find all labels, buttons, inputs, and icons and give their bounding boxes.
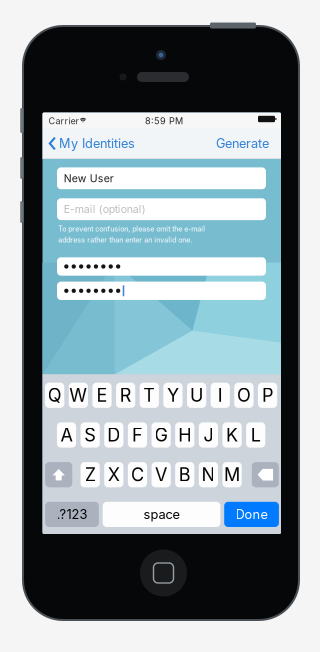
button[interactable]: My Identities bbox=[47, 128, 136, 159]
button[interactable]: M bbox=[222, 462, 242, 487]
staticText: U bbox=[190, 384, 203, 406]
staticText: T bbox=[143, 384, 155, 406]
staticText: My Identities bbox=[59, 136, 135, 151]
staticText: F bbox=[132, 424, 143, 446]
button[interactable]: K bbox=[222, 422, 242, 448]
button[interactable]: F bbox=[128, 422, 147, 448]
button[interactable]: L bbox=[246, 422, 265, 448]
staticText: E-mail (optional) bbox=[64, 203, 146, 215]
button[interactable]: .?123 bbox=[45, 502, 99, 527]
button[interactable]: S bbox=[81, 422, 100, 448]
button[interactable]: T bbox=[140, 383, 159, 408]
button[interactable]: Q bbox=[45, 383, 64, 408]
button[interactable]: E bbox=[92, 383, 112, 408]
staticText: C bbox=[131, 464, 144, 486]
button[interactable]: Shift bbox=[45, 462, 72, 487]
staticText: K bbox=[226, 424, 238, 446]
button[interactable]: J bbox=[199, 422, 218, 448]
staticText: Carrier bbox=[48, 115, 78, 126]
button[interactable]: O bbox=[234, 383, 253, 408]
button[interactable]: E-mail (optional) bbox=[57, 198, 266, 220]
button[interactable]: space bbox=[103, 502, 220, 527]
staticText: .?123 bbox=[56, 507, 87, 522]
staticText: D bbox=[107, 424, 120, 446]
staticText: Q bbox=[48, 384, 62, 406]
button[interactable]: Z bbox=[81, 462, 100, 487]
staticText: Z bbox=[85, 464, 96, 486]
staticText: J bbox=[203, 424, 213, 446]
button[interactable]: B bbox=[175, 462, 194, 487]
button[interactable]: W bbox=[69, 383, 88, 408]
staticText: space bbox=[144, 507, 180, 522]
button[interactable]: Generate bbox=[199, 128, 269, 159]
staticText: B bbox=[179, 464, 191, 486]
staticText: Generate bbox=[216, 136, 269, 151]
staticText: address rather than enter an invalid one… bbox=[58, 235, 192, 244]
staticText: V bbox=[155, 464, 167, 486]
button[interactable]: D bbox=[104, 422, 123, 448]
button[interactable] bbox=[57, 282, 266, 300]
staticText: I bbox=[218, 384, 223, 406]
staticText: Y bbox=[167, 384, 179, 406]
button[interactable] bbox=[57, 257, 266, 276]
button[interactable]: P bbox=[258, 383, 277, 408]
button[interactable]: I bbox=[211, 383, 230, 408]
staticText: H bbox=[178, 424, 191, 446]
button[interactable]: New User bbox=[57, 167, 266, 189]
button[interactable]: H bbox=[175, 422, 194, 448]
staticText: L bbox=[251, 424, 261, 446]
button[interactable]: Done bbox=[224, 502, 279, 527]
button[interactable]: R bbox=[116, 383, 135, 408]
button[interactable]: C bbox=[128, 462, 147, 487]
staticText: P bbox=[262, 384, 273, 406]
staticText: New User bbox=[64, 172, 114, 185]
staticText: W bbox=[69, 384, 87, 406]
staticText: X bbox=[108, 464, 120, 486]
button[interactable]: V bbox=[151, 462, 171, 487]
staticText: O bbox=[237, 384, 251, 406]
staticText: Done bbox=[235, 507, 267, 522]
button[interactable]: N bbox=[199, 462, 218, 487]
button[interactable]: U bbox=[187, 383, 206, 408]
staticText: 8:59 PM bbox=[145, 115, 183, 126]
staticText: R bbox=[120, 384, 132, 406]
button[interactable]: A bbox=[57, 422, 76, 448]
button[interactable]: X bbox=[104, 462, 123, 487]
staticText: S bbox=[84, 424, 96, 446]
button[interactable]: G bbox=[151, 422, 171, 448]
button[interactable]: Delete bbox=[252, 462, 279, 487]
staticText: G bbox=[155, 424, 168, 446]
staticText: A bbox=[60, 424, 72, 446]
staticText: E bbox=[96, 384, 107, 406]
button[interactable]: Y bbox=[163, 383, 182, 408]
staticText: N bbox=[201, 464, 215, 486]
staticText: M bbox=[224, 464, 240, 486]
staticText: To prevent confusion, please omit the e-… bbox=[58, 224, 205, 233]
